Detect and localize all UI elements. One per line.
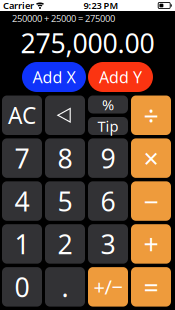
staticText: +/−: [93, 274, 122, 300]
button[interactable]: +/−: [88, 267, 128, 307]
staticText: 4: [14, 183, 29, 219]
staticText: AC: [8, 100, 36, 130]
staticText: 3: [100, 226, 115, 262]
staticText: Carrier: [3, 0, 34, 12]
staticText: ÷: [143, 97, 158, 133]
staticText: −: [143, 183, 158, 219]
staticText: +: [143, 226, 158, 262]
staticText: Add X: [32, 66, 75, 88]
button[interactable]: .: [45, 267, 85, 307]
staticText: Add Y: [99, 66, 142, 88]
staticText: 0: [14, 269, 29, 304]
staticText: 9: [100, 140, 115, 176]
button[interactable]: 5: [45, 181, 85, 221]
button[interactable]: −: [131, 181, 171, 221]
button[interactable]: Add Y: [88, 62, 153, 92]
staticText: .: [61, 269, 68, 304]
button[interactable]: 9: [88, 138, 128, 178]
button[interactable]: Add X: [22, 62, 86, 92]
staticText: ×: [143, 140, 158, 176]
button[interactable]: 8: [45, 138, 85, 178]
staticText: 8: [57, 140, 72, 176]
button[interactable]: 1: [2, 224, 42, 264]
staticText: =: [143, 269, 158, 304]
staticText: 1: [14, 226, 29, 262]
button[interactable]: Backspace: [45, 95, 85, 135]
button[interactable]: +: [131, 224, 171, 264]
button[interactable]: %: [88, 95, 128, 113]
button[interactable]: 0: [2, 267, 42, 307]
button[interactable]: =: [131, 267, 171, 307]
button[interactable]: 2: [45, 224, 85, 264]
button[interactable]: AC: [2, 95, 42, 135]
staticText: Tip: [97, 116, 118, 136]
button[interactable]: 4: [2, 181, 42, 221]
button[interactable]: ÷: [131, 95, 171, 135]
staticText: 5: [57, 183, 72, 219]
staticText: 6: [100, 183, 115, 219]
staticText: %: [102, 95, 114, 114]
button[interactable]: 6: [88, 181, 128, 221]
staticText: 275,000.00: [20, 25, 154, 61]
staticText: 9:23 PM: [83, 0, 118, 12]
button[interactable]: 3: [88, 224, 128, 264]
staticText: 2: [57, 226, 72, 262]
button[interactable]: Tip: [88, 117, 128, 135]
button[interactable]: 7: [2, 138, 42, 178]
button[interactable]: ×: [131, 138, 171, 178]
staticText: 250000 + 25000 = 275000: [12, 12, 115, 25]
staticText: 7: [14, 140, 29, 176]
